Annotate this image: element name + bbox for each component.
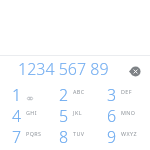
staticText: GHI xyxy=(26,109,38,116)
button[interactable]: 6 xyxy=(100,105,150,126)
staticText: ABC xyxy=(73,88,85,95)
staticText: 9 xyxy=(107,126,117,147)
button[interactable]: 2 xyxy=(50,84,100,105)
button[interactable]: 4 xyxy=(0,105,50,126)
staticText: 5 xyxy=(59,105,69,126)
staticText: 1 xyxy=(12,84,22,105)
button[interactable]: 3 xyxy=(100,84,150,105)
button[interactable]: Backspace xyxy=(123,60,145,82)
button[interactable]: 9 xyxy=(100,126,150,147)
button[interactable]: 5 xyxy=(50,105,100,126)
staticText: 1234 567 89 xyxy=(18,58,109,80)
staticText: 6 xyxy=(107,105,117,126)
staticText: PQRS xyxy=(26,130,42,137)
staticText: 7 xyxy=(12,126,22,147)
staticText: 2 xyxy=(59,84,69,105)
button[interactable]: 8 xyxy=(50,126,100,147)
staticText: MNO xyxy=(121,109,136,116)
button[interactable]: 1 xyxy=(0,84,50,105)
staticText: 8 xyxy=(59,126,69,147)
staticText: 3 xyxy=(107,84,117,105)
staticText: JKL xyxy=(73,109,82,116)
staticText: 4 xyxy=(12,105,22,126)
staticText: WXYZ xyxy=(121,130,137,137)
staticText: TUV xyxy=(73,130,85,137)
button[interactable]: 7 xyxy=(0,126,50,147)
staticText: DEF xyxy=(121,88,132,95)
